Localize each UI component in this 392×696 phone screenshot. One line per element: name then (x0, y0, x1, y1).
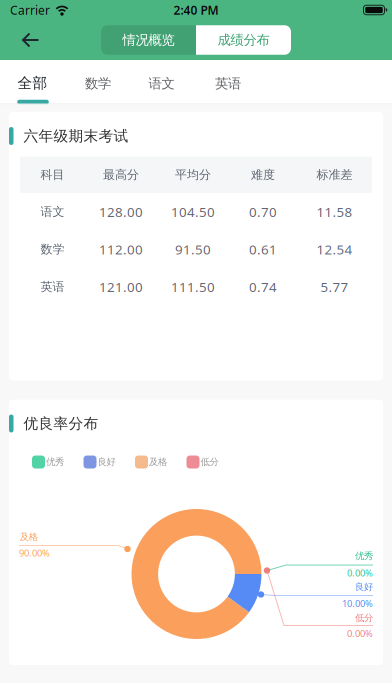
button[interactable]: 英语 (215, 75, 241, 92)
staticText: 91.50 (175, 240, 211, 258)
staticText: 0.61 (249, 240, 277, 258)
staticText: 优秀 (46, 456, 64, 468)
staticText: 0.00% (347, 627, 373, 640)
staticText: 及格 (20, 531, 38, 543)
staticText: 128.00 (99, 203, 143, 221)
staticText: 10.00% (342, 597, 373, 610)
button[interactable]: 及格 (135, 455, 167, 468)
staticText: 情况概览 (122, 32, 174, 48)
staticText: 平均分 (175, 167, 211, 182)
staticText: Carrier (10, 2, 50, 18)
staticText: 全部 (17, 74, 47, 92)
staticText: 数学 (85, 75, 111, 92)
staticText: 六年级期末考试 (23, 127, 128, 145)
staticText: 90.00% (19, 547, 50, 559)
button[interactable]: 优秀 (32, 455, 64, 468)
staticText: 104.50 (171, 203, 215, 221)
staticText: 及格 (149, 456, 167, 468)
staticText: 0.70 (249, 203, 277, 221)
staticText: 11.58 (316, 203, 352, 221)
staticText: 优秀 (355, 550, 373, 562)
staticText: 成绩分布 (217, 32, 269, 48)
staticText: 英语 (215, 75, 241, 92)
staticText: 难度 (251, 167, 275, 182)
button[interactable]: 情况概览 (101, 25, 196, 55)
staticText: 0.00% (347, 567, 373, 579)
staticText: 12.54 (316, 240, 352, 258)
staticText: 0.74 (249, 278, 277, 296)
staticText: 低分 (200, 456, 218, 468)
button[interactable]: Back (21, 26, 41, 54)
staticText: 良好 (355, 581, 373, 593)
button[interactable]: 数学 (85, 75, 111, 92)
staticText: 科目 (40, 167, 64, 182)
staticText: 优良率分布 (23, 414, 98, 432)
staticText: 111.50 (171, 278, 215, 296)
staticText: 良好 (97, 456, 115, 468)
button[interactable]: 成绩分布 (196, 25, 291, 55)
staticText: 2:40 PM (173, 2, 218, 18)
button[interactable]: 语文 (148, 75, 174, 92)
staticText: 标准差 (316, 167, 352, 182)
button[interactable]: 全部 (17, 74, 47, 92)
staticText: 语文 (148, 75, 174, 92)
staticText: 5.77 (320, 278, 348, 296)
staticText: 121.00 (99, 278, 143, 296)
button[interactable]: 良好 (83, 455, 115, 468)
button[interactable]: 低分 (186, 455, 218, 468)
staticText: 英语 (40, 279, 64, 294)
staticText: 低分 (355, 612, 373, 624)
staticText: 112.00 (99, 240, 143, 258)
staticText: 语文 (40, 204, 64, 219)
staticText: 数学 (40, 242, 64, 257)
staticText: 最高分 (103, 167, 139, 182)
